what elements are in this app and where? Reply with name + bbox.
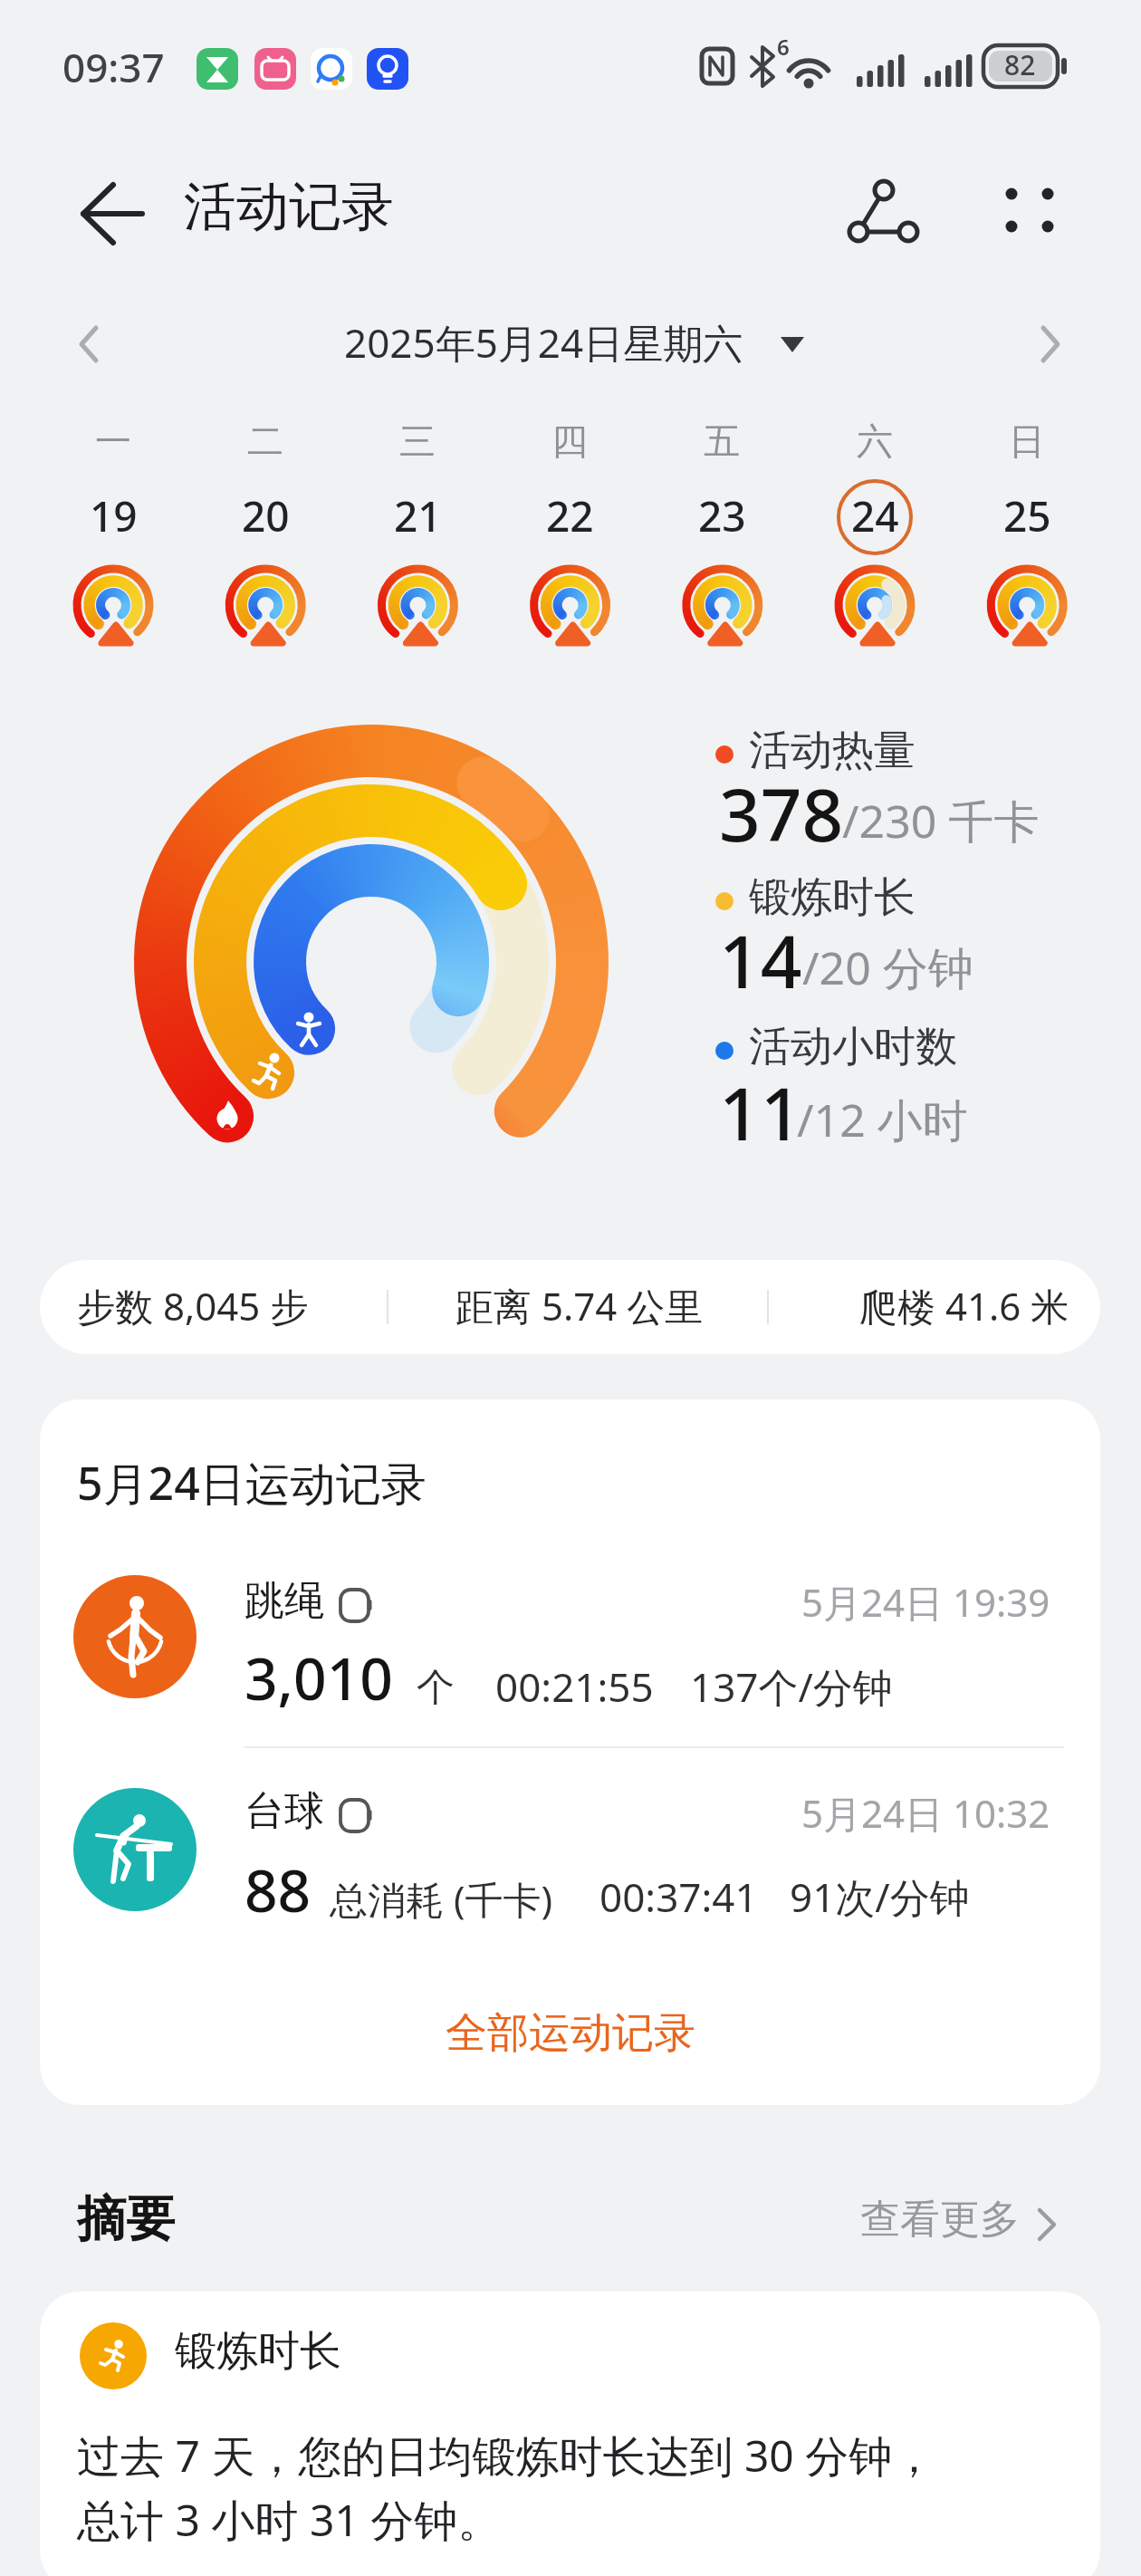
button[interactable]: [202, 412, 329, 652]
staticText: 25: [1003, 487, 1051, 544]
staticText: 三: [399, 418, 436, 464]
staticText: 00:21:55: [495, 1659, 654, 1714]
staticText: 个: [417, 1664, 455, 1712]
staticText: 台球: [244, 1786, 324, 1836]
button[interactable]: [507, 412, 634, 652]
staticText: 19: [90, 487, 138, 544]
staticText: 378: [719, 764, 844, 862]
button[interactable]: [833, 2187, 1078, 2260]
staticText: 总计 3 小时 31 分钟。: [77, 2490, 502, 2550]
staticText: 20: [242, 487, 290, 544]
staticText: 3,010: [244, 1639, 393, 1717]
staticText: 步数 8,045 步: [77, 1280, 309, 1331]
staticText: 137个/分钟: [690, 1659, 893, 1714]
button[interactable]: [40, 2292, 1100, 2576]
staticText: 82: [1004, 46, 1036, 83]
staticText: 六: [857, 418, 893, 464]
staticText: 日: [1009, 418, 1045, 464]
staticText: 活动记录: [184, 174, 394, 240]
button[interactable]: [964, 412, 1090, 652]
button[interactable]: [40, 1260, 1100, 1354]
staticText: 21: [394, 487, 442, 544]
staticText: 5月24日 10:32: [801, 1787, 1050, 1839]
staticText: 距离 5.74 公里: [455, 1280, 704, 1331]
staticText: 五: [704, 418, 740, 464]
staticText: 14: [719, 910, 802, 1009]
staticText: 00:37:41: [599, 1870, 758, 1924]
staticText: 88: [244, 1850, 312, 1929]
staticText: 5月24日 19:39: [801, 1576, 1050, 1628]
staticText: 22: [546, 487, 594, 544]
button[interactable]: [335, 299, 806, 385]
staticText: /12 小时: [797, 1089, 968, 1150]
staticText: 活动热量: [749, 725, 916, 777]
button[interactable]: [1005, 299, 1087, 385]
staticText: 总消耗 (千卡): [330, 1873, 553, 1925]
staticText: 91次/分钟: [790, 1870, 970, 1924]
staticText: 24: [851, 487, 899, 544]
button[interactable]: [659, 412, 786, 652]
staticText: 09:37: [62, 40, 165, 94]
staticText: 爬楼 41.6 米: [859, 1280, 1069, 1331]
staticText: 过去 7 天，您的日均锻炼时长达到 30 分钟，: [77, 2426, 936, 2485]
staticText: 跳绳: [244, 1576, 324, 1626]
staticText: 6: [777, 32, 790, 62]
staticText: 摘要: [77, 2188, 175, 2250]
staticText: /230 千卡: [842, 790, 1040, 851]
staticText: 11: [719, 1062, 802, 1161]
staticText: 活动小时数: [749, 1021, 957, 1073]
button[interactable]: 全部运动记录: [398, 1993, 743, 2074]
button[interactable]: [811, 412, 938, 652]
button[interactable]: [54, 299, 136, 385]
staticText: 一: [95, 418, 131, 464]
button[interactable]: [54, 172, 154, 254]
staticText: 5月24日运动记录: [77, 1452, 427, 1514]
button[interactable]: [354, 412, 481, 652]
staticText: 二: [247, 418, 283, 464]
staticText: 查看更多: [860, 2195, 1020, 2244]
staticText: 四: [551, 418, 588, 464]
staticText: 23: [698, 487, 746, 544]
staticText: 锻炼时长: [175, 2325, 341, 2378]
button[interactable]: [58, 1775, 1081, 1947]
button[interactable]: [50, 412, 177, 652]
staticText: /20 分钟: [802, 937, 973, 998]
staticText: 全部运动记录: [446, 2007, 695, 2060]
button[interactable]: [58, 1562, 1081, 1735]
staticText: 锻炼时长: [749, 871, 916, 924]
button[interactable]: [992, 172, 1069, 245]
staticText: 2025年5月24日星期六: [344, 315, 743, 370]
button[interactable]: [833, 168, 933, 254]
